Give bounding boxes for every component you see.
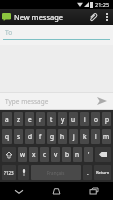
- button[interactable]: ': [84, 147, 93, 162]
- button[interactable]: b: [62, 147, 71, 162]
- button[interactable]: Type message: [5, 93, 91, 109]
- staticText: f: [39, 132, 42, 141]
- staticText: .: [87, 168, 89, 177]
- staticText: a: [5, 115, 9, 124]
- staticText: Return: [96, 170, 110, 176]
- staticText: k: [83, 132, 87, 141]
- staticText: u: [71, 115, 76, 124]
- button[interactable]: Return: [94, 165, 111, 180]
- button[interactable]: n: [73, 147, 82, 162]
- staticText: i: [84, 115, 86, 124]
- staticText: g: [50, 132, 54, 141]
- staticText: Type message: [5, 97, 49, 106]
- button[interactable]: j: [69, 129, 78, 144]
- button[interactable]: Home: [37, 182, 75, 200]
- button[interactable]: a: [2, 112, 12, 126]
- button[interactable]: p: [102, 112, 111, 126]
- button[interactable]: i: [80, 112, 89, 126]
- staticText: d: [28, 132, 32, 141]
- button[interactable]: h: [58, 129, 67, 144]
- button[interactable]: To: [0, 25, 113, 45]
- button[interactable]: New message: [0, 9, 85, 25]
- button[interactable]: Back: [0, 182, 37, 200]
- staticText: ?123: [4, 170, 14, 176]
- button[interactable]: d: [25, 129, 34, 144]
- staticText: w: [20, 150, 26, 159]
- staticText: b: [65, 150, 69, 159]
- button[interactable]: Voice input: [18, 165, 29, 180]
- button[interactable]: s: [14, 129, 23, 144]
- button[interactable]: Recent apps: [75, 182, 113, 200]
- button[interactable]: g: [47, 129, 56, 144]
- button[interactable]: v: [51, 147, 60, 162]
- button[interactable]: .: [83, 165, 92, 180]
- button[interactable]: x: [29, 147, 38, 162]
- staticText: ': [88, 150, 90, 159]
- button[interactable]: Attach: [85, 9, 101, 25]
- staticText: l: [95, 132, 97, 141]
- staticText: 21:25: [95, 1, 110, 8]
- staticText: v: [54, 150, 58, 159]
- staticText: e: [28, 115, 32, 124]
- staticText: m: [103, 132, 110, 141]
- button[interactable]: Send: [91, 93, 113, 109]
- staticText: n: [75, 150, 80, 159]
- staticText: t: [50, 115, 53, 124]
- staticText: To: [5, 28, 13, 37]
- button[interactable]: Shift: [2, 147, 16, 162]
- button[interactable]: e: [25, 112, 34, 126]
- staticText: Français: [47, 170, 65, 176]
- button[interactable]: r: [36, 112, 45, 126]
- staticText: c: [43, 150, 47, 159]
- button[interactable]: t: [47, 112, 56, 126]
- staticText: x: [32, 150, 36, 159]
- button[interactable]: ?123: [2, 165, 16, 180]
- button[interactable]: More options: [101, 9, 113, 25]
- staticText: z: [17, 115, 21, 124]
- button[interactable]: z: [14, 112, 23, 126]
- button[interactable]: l: [91, 129, 100, 144]
- button[interactable]: q: [2, 129, 12, 144]
- staticText: New message: [14, 12, 64, 22]
- button[interactable]: k: [80, 129, 89, 144]
- staticText: y: [61, 115, 65, 124]
- button[interactable]: y: [58, 112, 67, 126]
- staticText: s: [17, 132, 21, 141]
- button[interactable]: Backspace: [95, 147, 111, 162]
- button[interactable]: c: [40, 147, 49, 162]
- button[interactable]: m: [102, 129, 111, 144]
- staticText: h: [60, 132, 65, 141]
- staticText: j: [73, 132, 75, 141]
- staticText: q: [5, 132, 9, 141]
- button[interactable]: w: [18, 147, 27, 162]
- button[interactable]: Space: [31, 165, 81, 180]
- button[interactable]: u: [69, 112, 78, 126]
- staticText: r: [39, 115, 42, 124]
- button[interactable]: f: [36, 129, 45, 144]
- button[interactable]: o: [91, 112, 100, 126]
- staticText: p: [105, 115, 109, 124]
- staticText: o: [94, 115, 98, 124]
